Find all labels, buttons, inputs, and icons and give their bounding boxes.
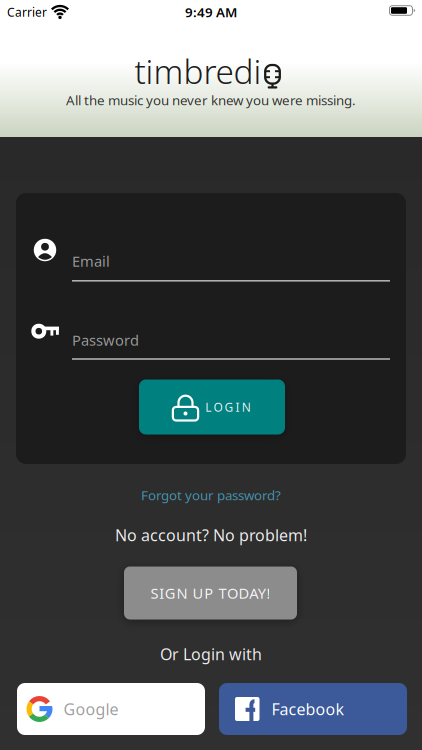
staticText: G [224, 399, 233, 415]
staticText: 9:49 AM [185, 3, 237, 21]
staticText: Forgot your password? [141, 486, 281, 504]
button[interactable]: L [139, 379, 285, 434]
staticText: No account? No problem! [115, 524, 307, 546]
button[interactable]: Forgot your password? [141, 486, 281, 504]
staticText: Carrier [7, 4, 47, 20]
button[interactable]: Password [30, 317, 390, 361]
staticText: Password [72, 330, 139, 350]
button[interactable]: Facebook [219, 683, 407, 735]
button[interactable]: Email [30, 236, 390, 284]
staticText: I [236, 399, 240, 415]
staticText: timbredi [134, 49, 261, 93]
staticText: Facebook [271, 698, 344, 720]
button[interactable]: Google [17, 683, 205, 735]
staticText: O [213, 399, 222, 415]
staticText: All the music you never knew you were mi… [66, 91, 356, 109]
staticText: Or Login with [160, 643, 262, 665]
staticText: N [242, 399, 251, 415]
staticText: SIGN UP TODAY! [151, 583, 270, 603]
staticText: Email [72, 251, 110, 271]
staticText: L [205, 399, 211, 415]
staticText: Google [63, 698, 118, 720]
button[interactable]: SIGN UP TODAY! [124, 566, 297, 619]
